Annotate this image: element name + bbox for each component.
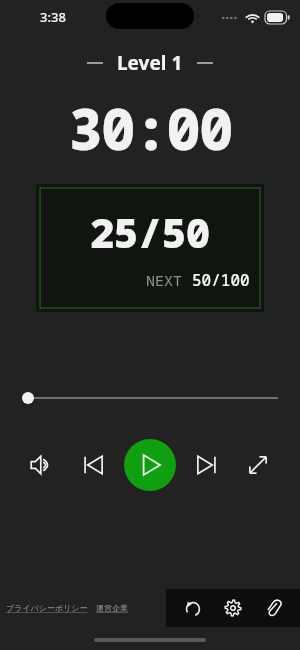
button[interactable]: Previous [73,445,113,485]
button[interactable]: Settings [218,593,248,623]
staticText: プライバシーポリシー [6,603,88,613]
button[interactable]: Next [187,445,227,485]
staticText: Level 1 [117,50,183,76]
staticText: 25/50 [90,205,210,259]
button[interactable]: Attach [258,593,288,623]
button[interactable]: Fullscreen [238,445,278,485]
button[interactable]: Reset [178,593,208,623]
button[interactable]: Play [124,439,176,491]
staticText: 30:00 [69,90,232,166]
button[interactable]: Volume [22,445,62,485]
staticText: NEXT [146,270,183,290]
button[interactable]: プライバシーポリシー [6,603,88,613]
staticText: 50/100 [192,269,250,291]
button[interactable]: 運営企業 [96,603,128,613]
button[interactable] [22,387,278,409]
staticText: 運営企業 [96,603,128,613]
staticText: 3:38 [40,8,66,26]
